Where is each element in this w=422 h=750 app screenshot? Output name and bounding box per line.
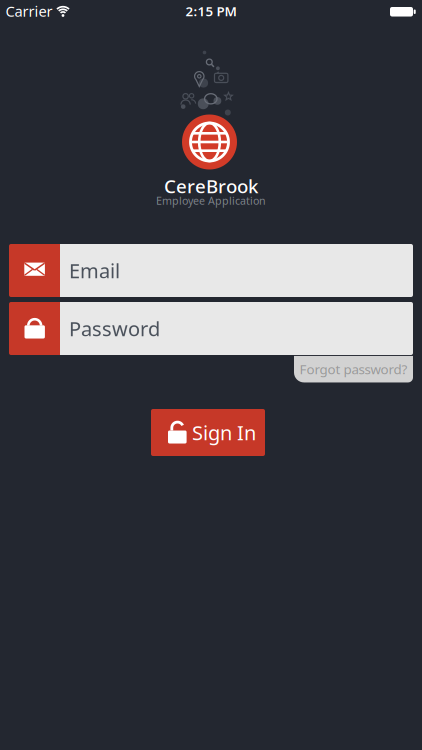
button[interactable]: Password	[9, 302, 413, 355]
staticText: Forgot password?	[299, 360, 407, 378]
button[interactable]: Email	[9, 244, 413, 297]
staticText: Sign In	[192, 419, 256, 446]
button[interactable]: Forgot password?	[294, 356, 413, 382]
button[interactable]: Sign In	[151, 409, 265, 456]
staticText: Carrier	[5, 1, 52, 21]
staticText: Employee Application	[156, 193, 266, 208]
staticText: 2:15 PM	[185, 2, 236, 20]
staticText: Email	[69, 257, 120, 284]
staticText: Password	[69, 315, 160, 342]
staticText: CereBrook	[164, 174, 258, 198]
